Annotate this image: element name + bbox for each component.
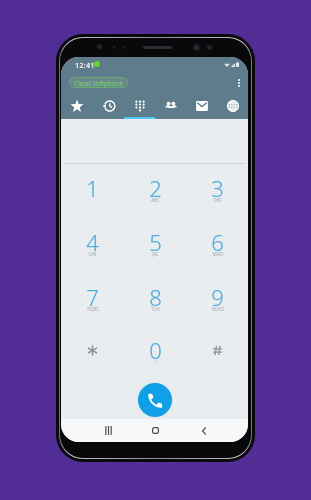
button[interactable]: 9 [186, 269, 248, 324]
button[interactable]: Contacts [155, 92, 186, 119]
staticText: 6 [211, 227, 224, 257]
staticText: TUV [151, 306, 160, 312]
staticText: 12:41 [75, 60, 95, 70]
button[interactable]: 4 [61, 214, 124, 269]
staticText: + [154, 359, 157, 365]
button[interactable]: 3 [186, 161, 248, 214]
button[interactable]: Favorites [61, 92, 93, 119]
staticText: ABC [151, 197, 160, 203]
staticText: PQRS [87, 306, 99, 312]
button[interactable]: Dialpad [124, 92, 155, 119]
button[interactable]: Cloud Softphone [69, 77, 128, 88]
button[interactable] [61, 324, 124, 376]
button[interactable]: More options [236, 77, 242, 89]
staticText: 4 [86, 227, 99, 257]
staticText: Cloud Softphone [74, 79, 123, 87]
staticText: MNO [212, 251, 224, 257]
staticText: JKL [152, 251, 159, 257]
button[interactable]: 6 [186, 214, 248, 269]
staticText: 5 [149, 227, 162, 257]
button[interactable]: 7 [61, 269, 124, 324]
staticText: 8 [149, 282, 162, 312]
staticText: 9 [211, 282, 224, 312]
button[interactable]: 0 [124, 324, 186, 376]
staticText: 0 [149, 335, 162, 365]
button[interactable]: Call history [93, 92, 124, 119]
staticText: DEF [213, 197, 222, 203]
button[interactable]: Voicemail [186, 92, 217, 119]
button[interactable]: 2 [124, 161, 186, 214]
button[interactable]: Back [194, 422, 214, 439]
button[interactable]: Call [138, 383, 172, 417]
button[interactable]: 8 [124, 269, 186, 324]
staticText: 7 [86, 282, 99, 312]
button[interactable]: 1 [61, 161, 124, 214]
button[interactable]: Recents [98, 422, 118, 439]
button[interactable]: Web [217, 92, 248, 119]
staticText: 1 [86, 173, 99, 203]
button[interactable] [186, 324, 248, 376]
staticText: GHI [88, 251, 97, 257]
staticText: 2 [149, 173, 162, 203]
staticText: 3 [211, 173, 224, 203]
button[interactable]: Home [145, 422, 165, 439]
staticText: WXYZ [212, 306, 224, 312]
button[interactable]: 5 [124, 214, 186, 269]
